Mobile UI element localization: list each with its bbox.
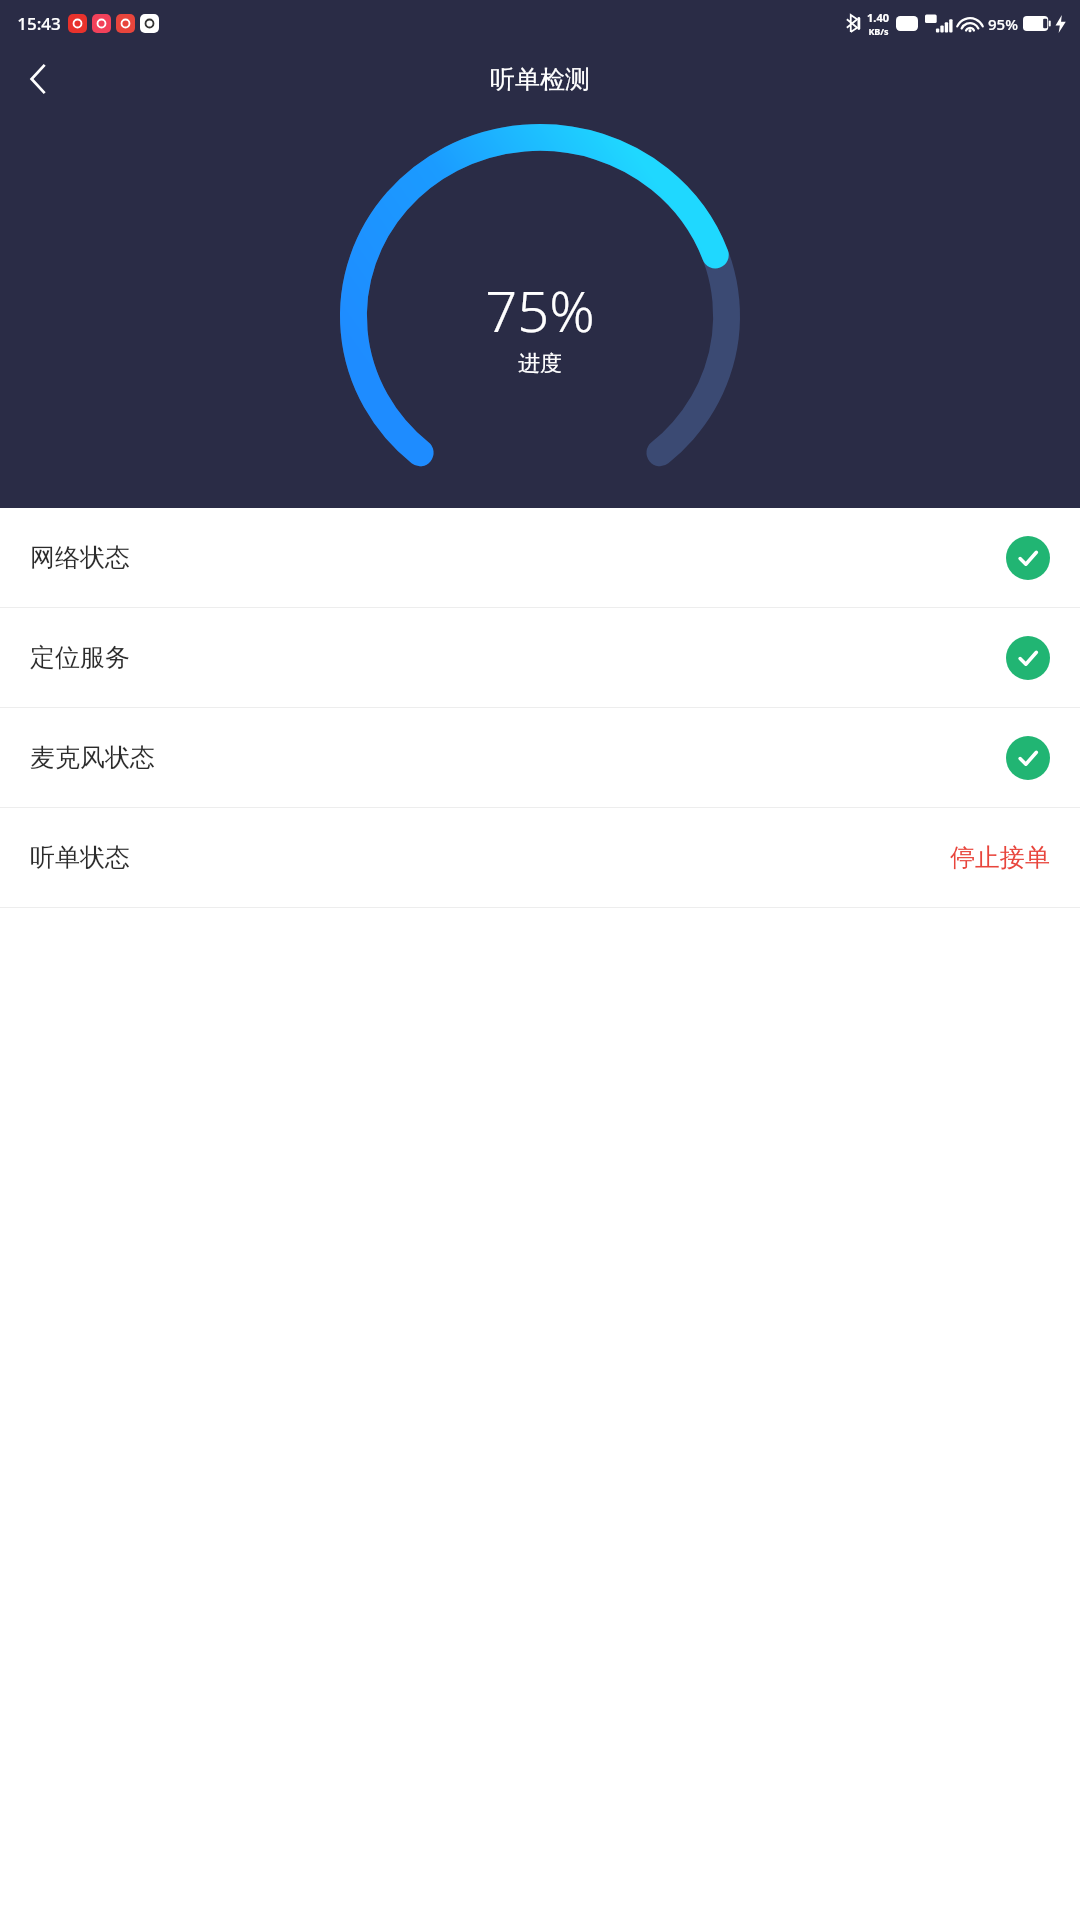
other: OK [1006,636,1050,680]
staticText: 听单状态 [30,842,130,873]
button[interactable]: 听单状态 [0,808,1080,907]
other: OK [1006,736,1050,780]
staticText: 听单检测 [490,64,590,95]
staticText: 75% [485,272,595,348]
button[interactable]: 麦克风状态 [0,708,1080,807]
button[interactable]: Back [10,51,66,107]
button[interactable]: 网络状态 [0,508,1080,607]
staticText: KB/s [868,25,889,37]
staticText: 进度 [518,350,562,378]
button[interactable]: 定位服务 [0,608,1080,707]
staticText: 停止接单 [950,842,1050,873]
staticText: 15:43 [17,12,61,35]
staticText: 网络状态 [30,542,130,573]
other: OK [1006,536,1050,580]
staticText: 麦克风状态 [30,742,155,773]
staticText: 定位服务 [30,642,130,673]
staticText: 1.40 [867,10,889,25]
staticText: 95% [988,14,1018,34]
